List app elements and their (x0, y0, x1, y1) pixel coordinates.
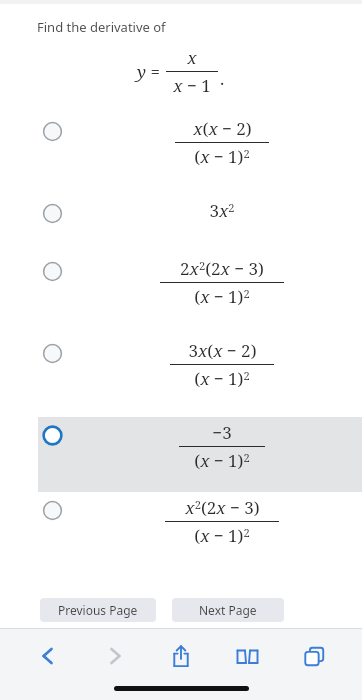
staticText: y = (137, 60, 160, 83)
button[interactable]: Back (26, 634, 70, 678)
staticText: 2x2(2x − 3) (180, 257, 264, 280)
staticText: (x − 1)2 (194, 285, 250, 308)
staticText: x (187, 46, 197, 69)
button[interactable]: Share (159, 634, 203, 678)
staticText: Find the derivative of (37, 18, 166, 36)
staticText: x2(2x − 3) (185, 496, 260, 519)
staticText: Previous Page (58, 602, 138, 618)
button[interactable]: 3x(x − 2) (38, 335, 362, 417)
staticText: (x − 1)2 (194, 145, 250, 168)
staticText: . (220, 67, 225, 90)
button[interactable]: −3 (38, 417, 362, 492)
button[interactable]: Tabs (292, 634, 336, 678)
staticText: (x − 1)2 (194, 524, 250, 547)
button[interactable]: Previous Page (40, 598, 156, 622)
button[interactable]: x2(2x − 3) (38, 492, 362, 576)
staticText: 3x2 (209, 199, 235, 222)
button[interactable]: Bookmarks (225, 634, 269, 678)
button[interactable]: Next Page (172, 598, 284, 622)
staticText: (x − 1)2 (194, 367, 250, 390)
button[interactable]: 3x2 (38, 195, 362, 253)
staticText: x − 1 (173, 74, 211, 97)
button[interactable]: Forward (93, 634, 137, 678)
staticText: 3x(x − 2) (188, 339, 257, 362)
staticText: x(x − 2) (193, 117, 252, 140)
staticText: (x − 1)2 (194, 449, 250, 472)
staticText: −3 (212, 421, 232, 444)
button[interactable]: x(x − 2) (38, 113, 362, 195)
button[interactable]: 2x2(2x − 3) (38, 253, 362, 335)
staticText: Next Page (199, 602, 257, 618)
